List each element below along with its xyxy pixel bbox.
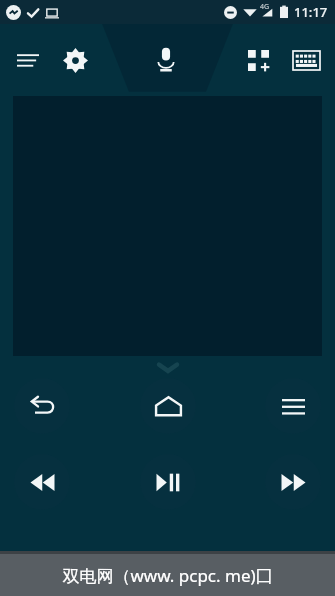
button[interactable]: Back xyxy=(14,378,70,434)
staticText: 11:17 xyxy=(294,3,328,21)
button[interactable]: Add app xyxy=(237,39,279,81)
button[interactable]: Voice input xyxy=(143,37,189,83)
staticText: 4G xyxy=(260,2,270,12)
staticText: 双电网（www. pcpc. me)囗 xyxy=(62,564,273,587)
button[interactable]: Home xyxy=(140,378,196,434)
button[interactable]: Collapse panel xyxy=(146,356,190,378)
button[interactable]: Keyboard xyxy=(285,39,327,81)
button[interactable]: Play or pause xyxy=(140,454,196,510)
button[interactable]: Menu xyxy=(8,40,48,80)
button[interactable]: Fast forward xyxy=(265,454,321,510)
button[interactable]: Menu xyxy=(265,378,321,434)
button[interactable]: Rewind xyxy=(14,454,70,510)
button[interactable]: Settings xyxy=(54,39,96,81)
